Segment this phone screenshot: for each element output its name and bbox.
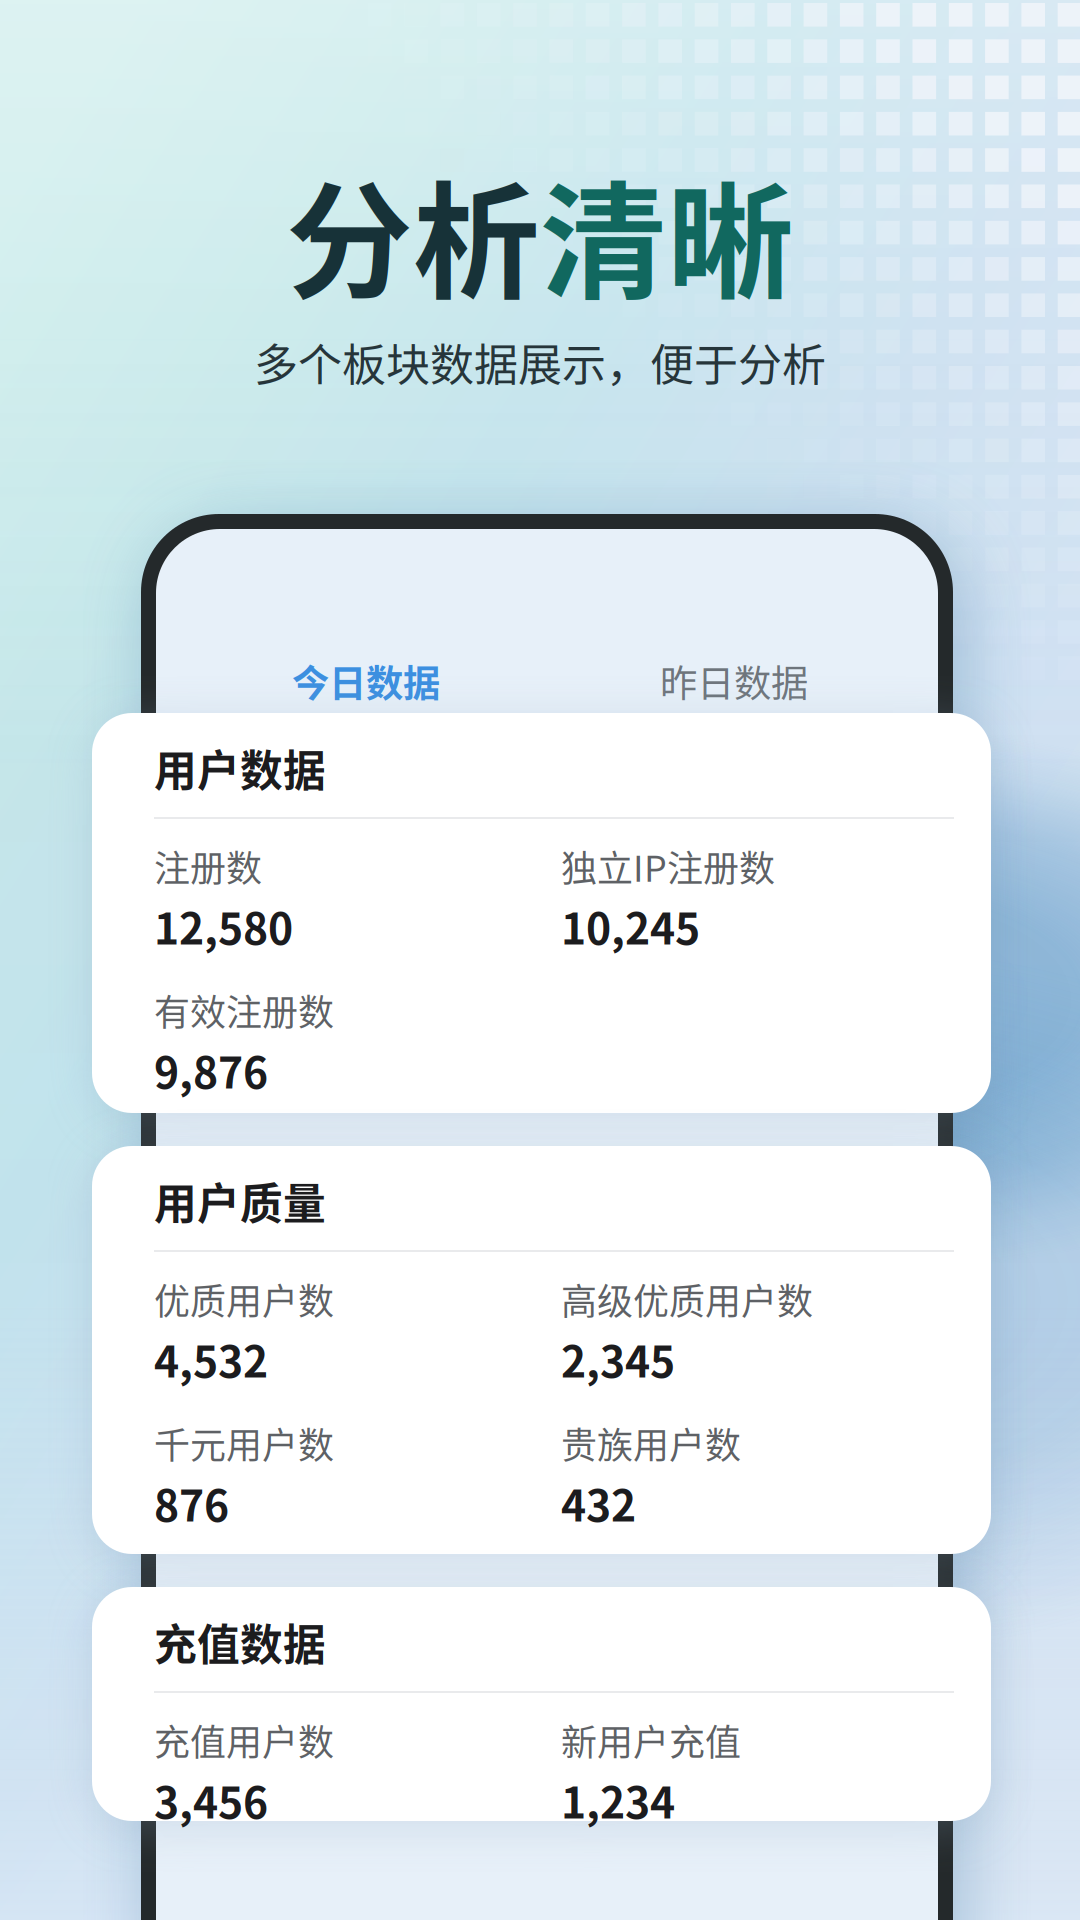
staticText: 432 [561,1472,636,1534]
button[interactable]: 昨日数据 [594,644,874,718]
staticText: 用户数据 [154,737,326,799]
staticText: 用户质量 [154,1170,326,1232]
staticText: 4,532 [154,1328,268,1390]
staticText: 独立IP注册数 [561,840,775,892]
staticText: 多个板块数据展示，便于分析 [254,330,826,394]
staticText: 9,876 [154,1039,268,1101]
staticText: 注册数 [154,840,262,892]
staticText: 优质用户数 [154,1273,334,1325]
staticText: 昨日数据 [660,654,808,708]
staticText: 充值用户数 [154,1714,334,1766]
staticText: 新用户充值 [561,1714,741,1766]
staticText: 3,456 [154,1769,268,1831]
staticText: 12,580 [154,895,293,957]
staticText: 千元用户数 [154,1417,334,1469]
staticText: 高级优质用户数 [561,1273,813,1325]
staticText: 清晰 [540,141,794,325]
staticText: 分析 [286,141,540,325]
staticText: 876 [154,1472,229,1534]
staticText: 1,234 [561,1769,675,1831]
button[interactable]: 今日数据 [226,644,506,718]
staticText: 今日数据 [292,654,440,708]
staticText: 贵族用户数 [561,1417,741,1469]
staticText: 10,245 [561,895,700,957]
staticText: 充值数据 [154,1611,326,1673]
staticText: 2,345 [561,1328,675,1390]
staticText: 有效注册数 [154,984,334,1036]
